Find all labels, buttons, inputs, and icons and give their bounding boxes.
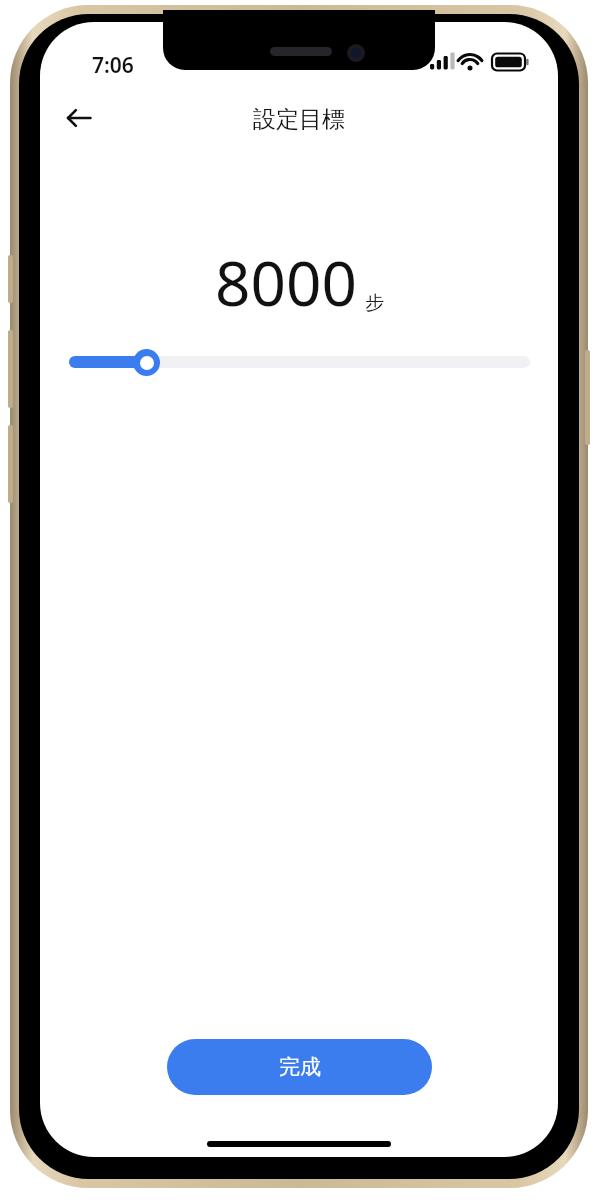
button[interactable]: 返回: [57, 96, 101, 140]
button[interactable]: 目標步數滑桿: [69, 344, 530, 380]
button[interactable]: 完成: [167, 1039, 432, 1095]
staticText: 設定目標: [40, 105, 558, 134]
staticText: 完成: [279, 1054, 321, 1080]
staticText: 7:06: [92, 51, 134, 80]
staticText: 8000: [215, 240, 357, 324]
staticText: 步: [365, 291, 384, 315]
